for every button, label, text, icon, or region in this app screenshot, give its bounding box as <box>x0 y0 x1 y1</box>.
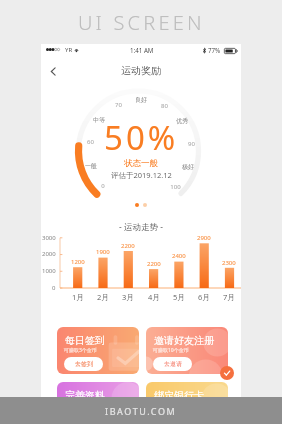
staticText: 90 <box>188 140 195 148</box>
staticText: 1月 <box>72 292 84 302</box>
staticText: 可赚取3个金币 <box>64 347 97 354</box>
button[interactable]: 去签到 <box>64 357 103 371</box>
staticText: IBAOTU.COM <box>105 405 177 417</box>
staticText: 绑定银行卡 <box>154 389 204 402</box>
button[interactable]: Back <box>44 62 62 80</box>
staticText: 2400 <box>172 252 186 260</box>
staticText: 每日签到 <box>65 334 105 347</box>
staticText: 状态一般 <box>124 158 158 169</box>
staticText: 2月 <box>97 292 109 302</box>
staticText: 2300 <box>222 259 236 267</box>
staticText: 1000 <box>42 267 56 275</box>
staticText: 70 <box>115 101 122 109</box>
staticText: 0 <box>101 182 105 190</box>
button[interactable]: 邀请好友注册 <box>146 327 228 374</box>
staticText: 0 <box>52 284 56 292</box>
staticText: 3000 <box>42 234 56 242</box>
staticText: 2000 <box>42 250 56 258</box>
staticText: - 运动走势 - <box>119 221 163 233</box>
staticText: 去邀请 <box>164 360 182 368</box>
staticText: 6月 <box>198 292 210 302</box>
button[interactable]: 每日签到 <box>57 327 139 374</box>
button[interactable]: 去邀请 <box>153 357 192 371</box>
staticText: 2200 <box>121 242 135 250</box>
staticText: 1:41 AM <box>130 46 154 54</box>
staticText: 1900 <box>96 248 110 256</box>
staticText: 2200 <box>147 260 161 268</box>
staticText: 极好 <box>182 163 194 171</box>
staticText: 完善资料 <box>65 389 105 402</box>
staticText: 中等 <box>93 116 105 124</box>
staticText: 优秀 <box>176 117 188 125</box>
staticText: 3月 <box>122 292 134 302</box>
staticText: 1200 <box>71 258 85 266</box>
staticText: 2900 <box>197 234 211 242</box>
staticText: 100 <box>170 183 181 191</box>
staticText: UI SCREEN <box>78 9 205 36</box>
staticText: 50% <box>104 115 179 160</box>
staticText: 77% <box>208 46 221 54</box>
button[interactable]: 去绑定 <box>153 412 192 424</box>
button[interactable]: 绑定银行卡 <box>146 382 228 424</box>
button[interactable]: 完善资料 <box>57 382 139 424</box>
staticText: 7月 <box>223 292 235 302</box>
staticText: 邀请好友注册 <box>154 334 214 347</box>
staticText: 80 <box>161 102 168 110</box>
staticText: YR <box>65 46 73 54</box>
staticText: 可赚取5个金币 <box>153 402 186 409</box>
staticText: 可赚取10个金币 <box>153 347 189 354</box>
staticText: 5月 <box>173 292 185 302</box>
staticText: 4月 <box>148 292 160 302</box>
staticText: 去签到 <box>75 360 93 368</box>
staticText: 运动奖励 <box>121 64 161 77</box>
staticText: 评估于2019.12.12 <box>111 170 172 180</box>
staticText: 60 <box>87 138 94 146</box>
staticText: 良好 <box>135 96 147 104</box>
staticText: 一般 <box>85 162 97 170</box>
